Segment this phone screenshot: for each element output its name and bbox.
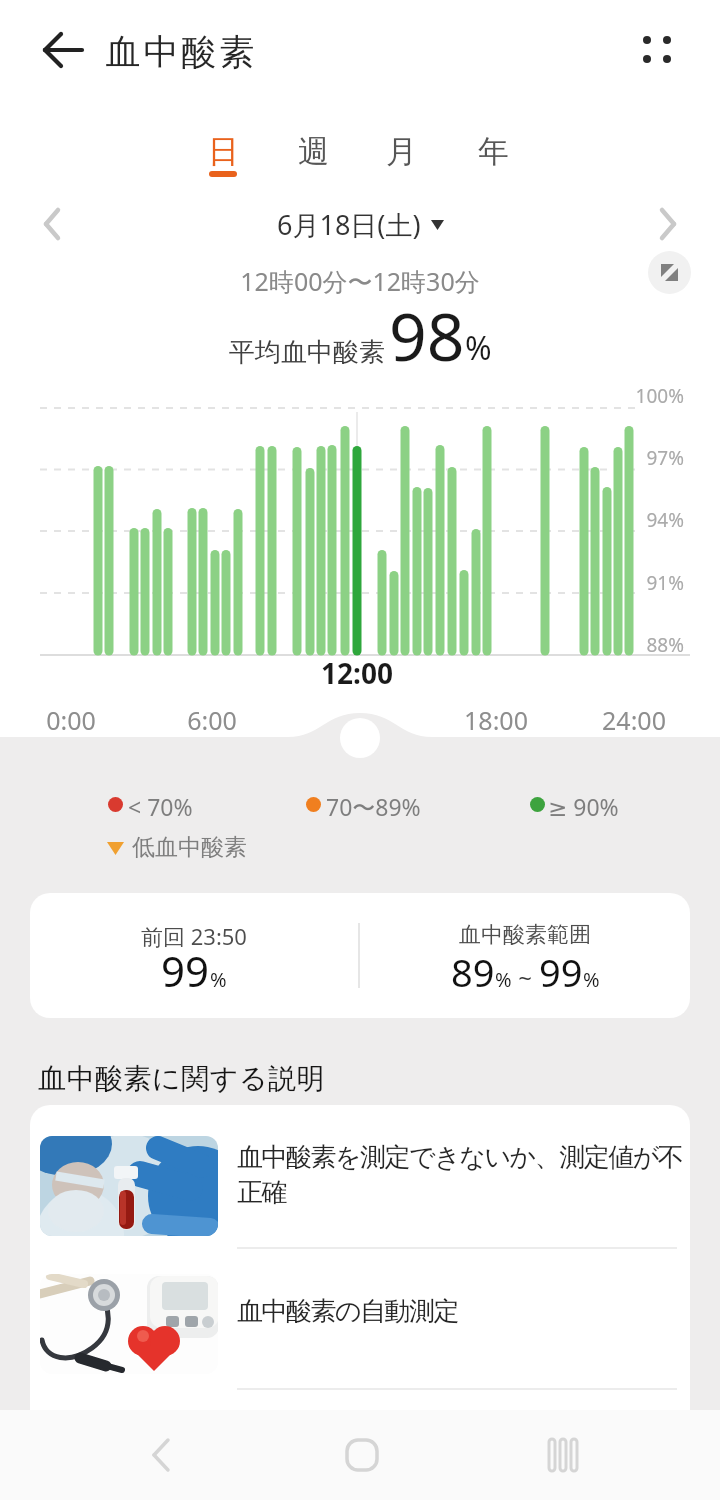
button[interactable] bbox=[30, 1264, 690, 1384]
staticText: 6月18日(土) bbox=[277, 206, 421, 243]
staticText: 血中酸素の自動測定 bbox=[237, 1295, 459, 1328]
staticText: % bbox=[210, 966, 227, 993]
staticText: 12時00分〜12時30分 bbox=[168, 264, 552, 298]
staticText: 97% bbox=[604, 445, 684, 471]
staticText: ~ bbox=[512, 961, 539, 994]
staticText: 平均血中酸素 bbox=[229, 336, 385, 369]
button[interactable] bbox=[648, 251, 691, 294]
staticText: 88% bbox=[604, 632, 684, 658]
staticText: 6:00 bbox=[172, 703, 252, 737]
staticText: 99 bbox=[539, 946, 583, 998]
button[interactable]: 6月18日(土) bbox=[0, 206, 720, 243]
staticText: 70〜89% bbox=[326, 791, 421, 822]
button[interactable]: 年 bbox=[460, 120, 526, 182]
button[interactable] bbox=[26, 198, 78, 250]
staticText: 月 bbox=[386, 132, 417, 171]
staticText: 100% bbox=[604, 383, 684, 409]
button[interactable]: 月 bbox=[368, 120, 434, 182]
staticText: 低血中酸素 bbox=[132, 833, 247, 862]
button[interactable]: 週 bbox=[280, 120, 346, 182]
staticText: 血中酸素範囲 bbox=[459, 921, 591, 949]
button[interactable] bbox=[642, 198, 694, 250]
staticText: 血中酸素に関する説明 bbox=[38, 1061, 325, 1096]
staticText: 週 bbox=[298, 132, 329, 171]
staticText: 血中酸素 bbox=[104, 30, 256, 74]
staticText: % bbox=[495, 966, 512, 993]
staticText: 18:00 bbox=[456, 703, 536, 737]
staticText: % bbox=[465, 326, 492, 370]
staticText: 99 bbox=[161, 942, 210, 999]
staticText: % bbox=[583, 966, 600, 993]
button[interactable] bbox=[30, 1126, 690, 1246]
staticText: < 70% bbox=[128, 791, 193, 822]
staticText: 日 bbox=[208, 132, 239, 171]
staticText: 91% bbox=[604, 570, 684, 596]
staticText: 0:00 bbox=[31, 703, 111, 737]
staticText: ≥ 90% bbox=[548, 791, 619, 822]
staticText: 前回 23:50 bbox=[141, 921, 247, 951]
staticText: 血中酸素を測定できないか、測定値が不正確 bbox=[237, 1141, 690, 1209]
button[interactable] bbox=[130, 1425, 190, 1485]
staticText: 年 bbox=[478, 132, 509, 171]
staticText: 24:00 bbox=[594, 703, 674, 737]
staticText: 89 bbox=[451, 946, 495, 998]
button[interactable] bbox=[30, 24, 86, 76]
button[interactable] bbox=[332, 1425, 392, 1485]
staticText: 94% bbox=[604, 507, 684, 533]
staticText: 12:00 bbox=[317, 654, 397, 692]
button[interactable] bbox=[533, 1425, 593, 1485]
button[interactable] bbox=[628, 22, 688, 78]
button[interactable]: 日 bbox=[190, 120, 256, 182]
staticText: 98 bbox=[389, 290, 465, 380]
